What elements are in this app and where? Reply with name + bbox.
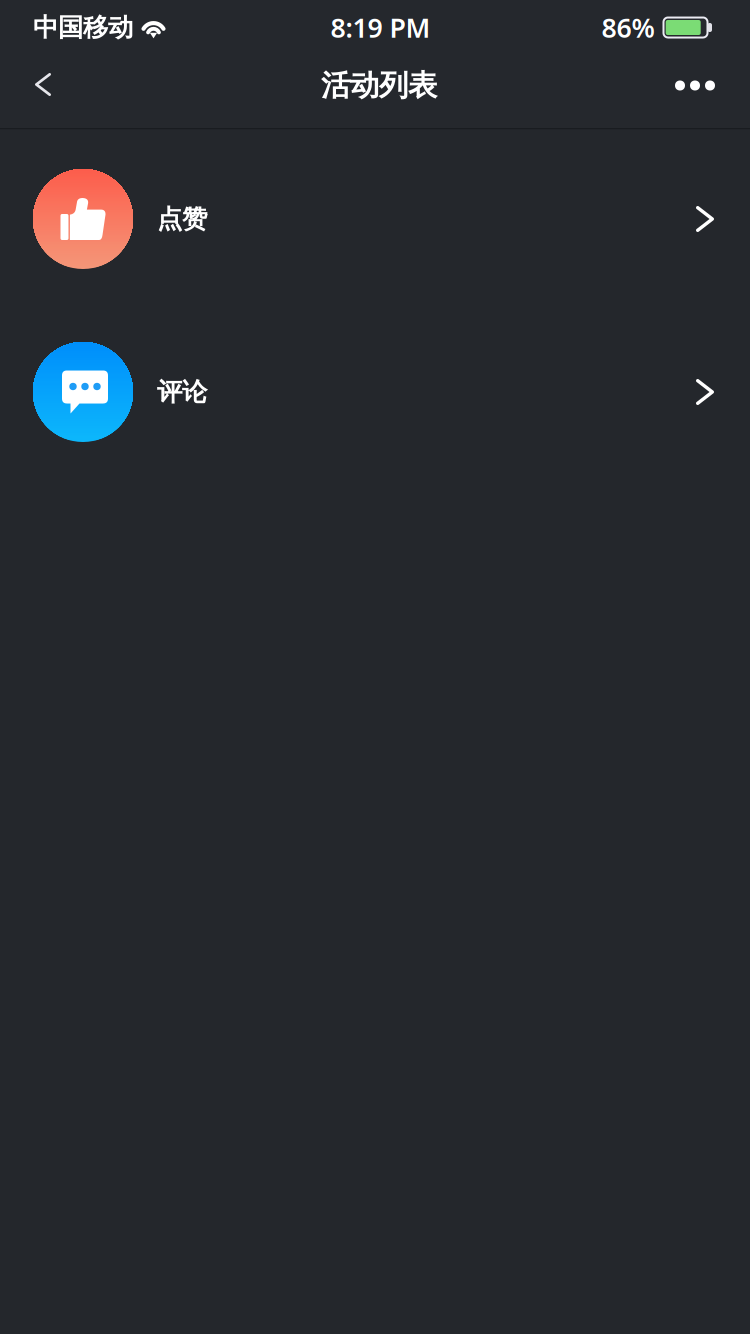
- button[interactable]: 评论: [0, 305, 750, 478]
- staticText: 中国移动: [33, 12, 133, 43]
- button[interactable]: 点赞: [0, 132, 750, 305]
- button[interactable]: More options: [657, 61, 750, 121]
- staticText: 活动列表: [321, 67, 437, 103]
- button[interactable]: Back: [12, 61, 74, 121]
- staticText: 点赞: [157, 203, 207, 234]
- staticText: 评论: [157, 376, 207, 407]
- staticText: 8:19 PM: [330, 10, 430, 45]
- staticText: 86%: [601, 10, 654, 45]
